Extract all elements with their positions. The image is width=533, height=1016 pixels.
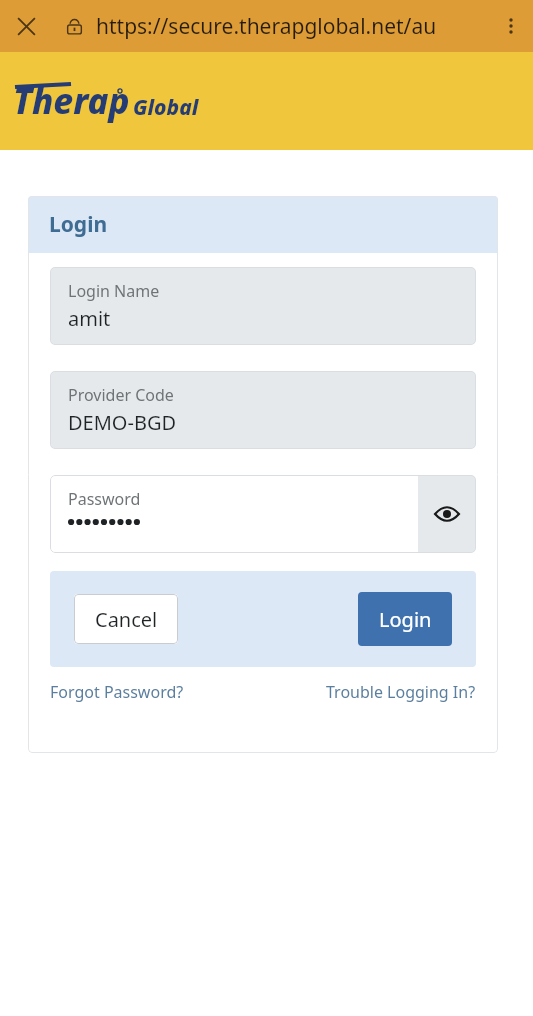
button[interactable]: Cancel — [74, 594, 178, 644]
button[interactable]: Login — [358, 592, 452, 646]
staticText: Provider Code — [68, 384, 174, 406]
button[interactable]: Forgot Password? — [50, 681, 184, 703]
staticText: Login Name — [68, 280, 160, 302]
staticText: Login — [49, 210, 108, 239]
staticText: Therap — [13, 77, 130, 125]
staticText: Login — [379, 606, 432, 633]
button[interactable]: Password — [50, 475, 418, 553]
button[interactable]: Login Name — [50, 267, 476, 345]
staticText: amit — [68, 305, 111, 332]
button[interactable]: More options — [488, 0, 533, 52]
staticText: Password — [68, 488, 141, 510]
button[interactable]: Trouble Logging In? — [326, 681, 476, 703]
staticText: Trouble Logging In? — [326, 681, 476, 703]
button[interactable]: Provider Code — [50, 371, 476, 449]
staticText: Cancel — [95, 606, 158, 633]
button[interactable]: Therap Global — [13, 77, 196, 125]
staticText: Forgot Password? — [50, 681, 184, 703]
button[interactable]: Show password — [418, 475, 476, 553]
staticText: DEMO-BGD — [68, 409, 177, 436]
staticText: https://secure.therapglobal.net/au — [96, 12, 437, 41]
button[interactable]: Close — [0, 0, 52, 52]
staticText: Global — [133, 93, 199, 122]
other: Secure connection — [52, 0, 96, 52]
